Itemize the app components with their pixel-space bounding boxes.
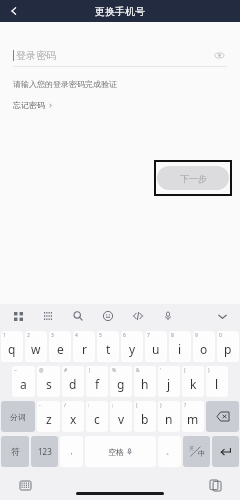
button[interactable]: ( [134,401,156,432]
button[interactable]: ' [158,366,180,397]
button[interactable]: 5 [97,331,119,362]
button[interactable]: - [37,401,60,432]
staticText: j [167,376,171,392]
staticText: 英 [189,445,194,451]
staticText: c [94,411,100,427]
staticText: z [46,411,52,427]
staticText: ) [208,367,210,374]
staticText: ' [160,367,162,374]
staticText: : [88,402,90,409]
staticText: ( [184,367,186,374]
staticText: n [165,411,173,427]
staticText: 123 [38,446,52,457]
staticText: 3 [51,332,54,339]
button[interactable]: 9 [193,331,215,362]
button[interactable]: & [134,366,156,397]
staticText: m [187,411,199,427]
button[interactable]: Show password [211,47,227,63]
button[interactable]: ; [110,401,132,432]
button[interactable]: Search [70,308,86,324]
button[interactable]: 8 [169,331,191,362]
button[interactable]: / [62,401,84,432]
button[interactable]: ? [182,401,204,432]
staticText: l [215,376,219,392]
button[interactable]: Back [5,2,23,20]
staticText: ， [68,447,75,456]
button[interactable]: 符 [1,436,29,467]
button[interactable]: Clipboard [207,477,223,493]
button[interactable]: 空格 [85,436,156,467]
staticText: 空格 [108,447,124,457]
staticText: u [152,341,160,357]
button[interactable]: 忘记密码 [13,100,53,110]
staticText: 下一步 [180,173,207,184]
button[interactable]: Symbols [130,308,146,324]
staticText: k [190,376,197,392]
staticText: 8 [171,332,174,339]
staticText: o [200,341,208,357]
staticText: 忘记密码 [13,100,45,110]
staticText: 1 [3,332,6,339]
button[interactable]: ， [60,436,83,467]
button[interactable]: ( [182,366,204,397]
button[interactable]: # [62,366,84,397]
button[interactable]: ) [206,366,228,397]
staticText: ) [160,402,162,409]
staticText: % [112,367,117,374]
button[interactable]: Hide keyboard [214,308,230,324]
button[interactable]: : [86,401,108,432]
staticText: ~ [14,367,17,374]
button[interactable]: Voice input [160,308,176,324]
button[interactable]: 7 [145,331,167,362]
staticText: ; [112,402,114,409]
button[interactable]: 0 [217,331,239,362]
button[interactable]: ) [158,401,180,432]
staticText: d [69,376,77,392]
button[interactable]: ~ [12,366,35,397]
button[interactable]: @ [37,366,60,397]
staticText: v [118,411,125,427]
staticText: w [31,341,41,357]
staticText: ? [184,402,187,409]
button[interactable]: 3 [49,331,71,362]
staticText: 4 [75,332,78,339]
button[interactable]: Switch language [183,436,210,467]
button[interactable]: 4 [73,331,95,362]
staticText: f [95,376,100,392]
button[interactable]: 2 [25,331,47,362]
staticText: 6 [123,332,126,339]
staticText: x [70,411,77,427]
staticText: 2 [27,332,30,339]
button[interactable]: Keyboard settings [17,477,33,493]
staticText: @ [39,367,44,374]
button[interactable]: Backspace [206,401,239,432]
staticText: p [224,341,232,357]
staticText: ( [136,402,138,409]
button[interactable]: 123 [31,436,58,467]
button[interactable]: Apps [10,308,26,324]
button[interactable]: Keyboard [40,308,56,324]
staticText: g [117,376,125,392]
button[interactable]: 分词 [1,401,35,432]
button[interactable]: 下一步 [157,166,229,190]
staticText: q [8,341,16,357]
button[interactable]: | [86,366,108,397]
button[interactable]: Emoji [100,308,116,324]
button[interactable]: Enter [212,436,239,467]
staticText: 符 [11,446,20,457]
button[interactable]: 6 [121,331,143,362]
staticText: 7 [147,332,150,339]
staticText: / [64,402,66,409]
staticText: 0 [219,332,222,339]
staticText: y [129,341,136,357]
button[interactable]: 1 [1,331,23,362]
staticText: & [136,367,140,374]
staticText: | [88,367,91,374]
button[interactable]: 。 [158,436,181,467]
button[interactable]: % [110,366,132,397]
staticText: 请输入您的登录密码完成验证 [13,79,117,89]
staticText: 更换手机号 [95,5,145,18]
staticText: 登录密码 [16,49,56,62]
staticText: 分词 [10,412,26,422]
staticText: 中 [198,449,205,458]
